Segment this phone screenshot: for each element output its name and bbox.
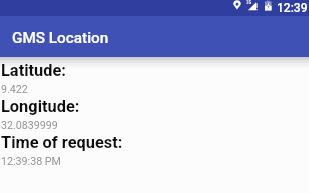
other: Location in use <box>233 0 242 12</box>
other: Battery charging <box>265 0 273 12</box>
button[interactable]: 32.0839999 <box>1 119 309 133</box>
staticText: 12:39:38 PM <box>1 155 61 168</box>
button[interactable]: 12:39:38 PM <box>1 155 309 169</box>
button[interactable]: Latitude: <box>1 61 309 83</box>
staticText: 32.0839999 <box>1 119 58 132</box>
other: Mobile signal 3G <box>246 0 259 12</box>
staticText: GMS Location <box>12 29 109 47</box>
staticText: Time of request: <box>1 133 123 152</box>
button[interactable]: Longitude: <box>1 97 309 119</box>
button[interactable]: GMS Location <box>0 16 309 57</box>
staticText: 9.422 <box>1 83 28 96</box>
staticText: 12:39 <box>277 1 308 15</box>
staticText: Longitude: <box>1 97 80 116</box>
staticText: Latitude: <box>1 61 66 80</box>
button[interactable]: 9.422 <box>1 83 309 97</box>
button[interactable]: Time of request: <box>1 133 309 155</box>
